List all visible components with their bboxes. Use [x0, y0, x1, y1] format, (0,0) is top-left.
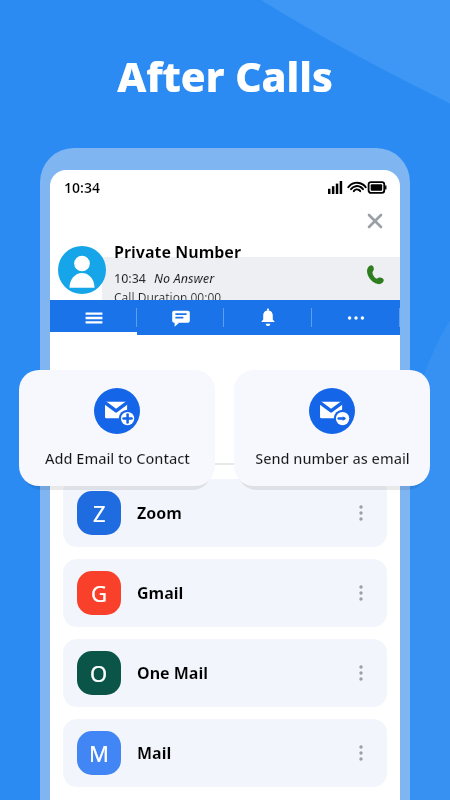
staticText: O: [90, 658, 108, 688]
button[interactable]: Add Email to Contact: [19, 370, 215, 486]
button[interactable]: Send number as email: [234, 370, 430, 486]
staticText: No Answer: [154, 270, 215, 287]
button[interactable]: Notifications: [224, 300, 312, 335]
staticText: Gmail: [137, 582, 184, 604]
button[interactable]: Call back: [364, 264, 386, 286]
staticText: Call Duration 00:00: [114, 289, 222, 300]
staticText: G: [91, 578, 108, 608]
button[interactable]: More options for Zoom: [349, 501, 373, 525]
staticText: 10:34: [64, 178, 100, 197]
staticText: Send number as email: [255, 448, 410, 468]
staticText: Mail: [137, 742, 172, 764]
button[interactable]: M: [63, 719, 387, 787]
button[interactable]: G: [63, 559, 387, 627]
button[interactable]: Close: [362, 208, 388, 234]
button[interactable]: More: [312, 300, 400, 335]
button[interactable]: More options for Gmail: [349, 581, 373, 605]
button[interactable]: Z: [63, 479, 387, 547]
button[interactable]: More options for Mail: [349, 741, 373, 765]
button[interactable]: Menu: [50, 300, 137, 335]
staticText: Add Email to Contact: [45, 448, 190, 468]
staticText: Private Number: [114, 241, 242, 263]
button[interactable]: More options for One Mail: [349, 661, 373, 685]
staticText: After Calls: [0, 48, 450, 104]
staticText: M: [89, 738, 109, 768]
button[interactable]: Messages: [137, 300, 224, 335]
staticText: One Mail: [137, 662, 208, 684]
button[interactable]: O: [63, 639, 387, 707]
staticText: 10:34: [114, 270, 147, 287]
staticText: Zoom: [137, 502, 182, 524]
staticText: Z: [93, 498, 106, 528]
